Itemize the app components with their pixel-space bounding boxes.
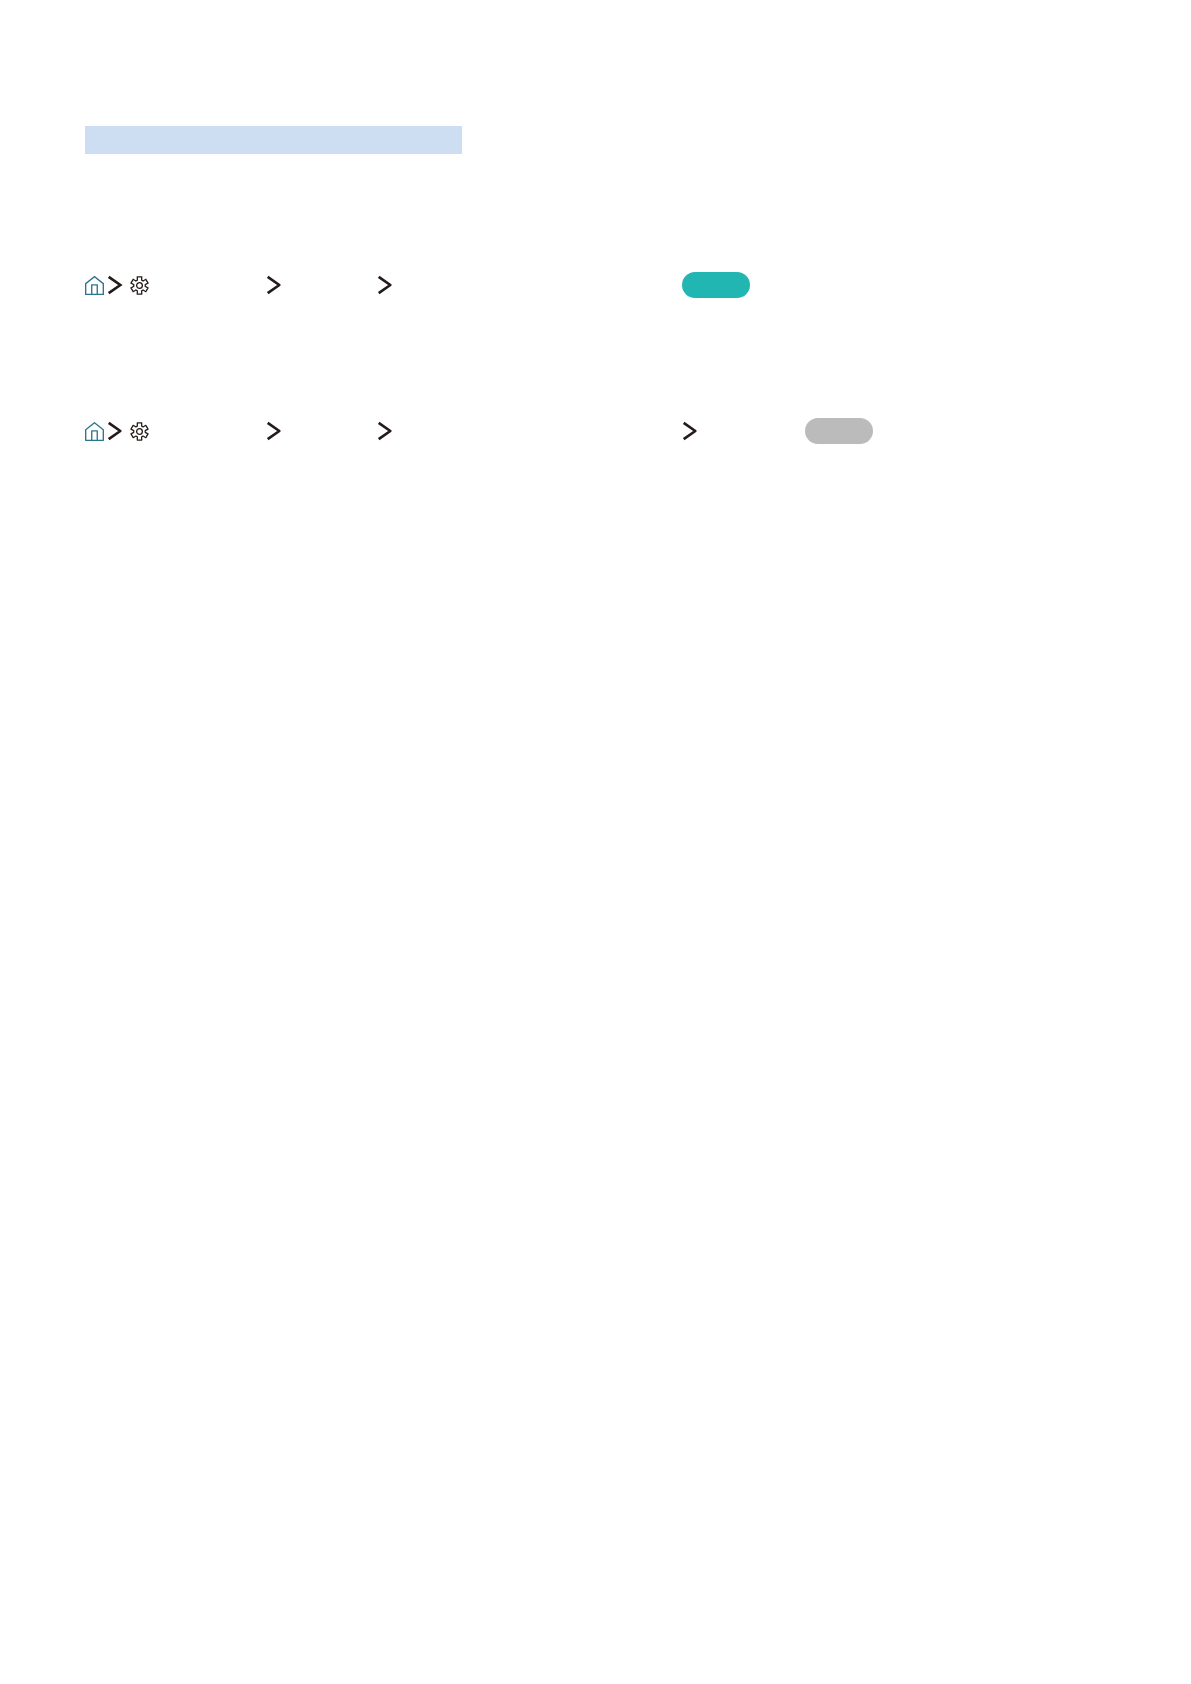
button[interactable]: Then (266, 421, 281, 441)
button[interactable]: Then (377, 421, 392, 441)
button[interactable]: Off (805, 418, 873, 444)
button[interactable]: Then (266, 275, 281, 295)
button[interactable]: Settings (130, 276, 149, 295)
button[interactable]: Then (682, 421, 697, 441)
button[interactable]: Home (85, 276, 104, 295)
button[interactable]: On (682, 272, 750, 298)
button[interactable]: Then (107, 421, 122, 441)
button[interactable]: Settings (130, 422, 149, 441)
button[interactable]: Then (107, 275, 122, 295)
button[interactable]: Home (85, 422, 104, 441)
button[interactable]: Then (377, 275, 392, 295)
